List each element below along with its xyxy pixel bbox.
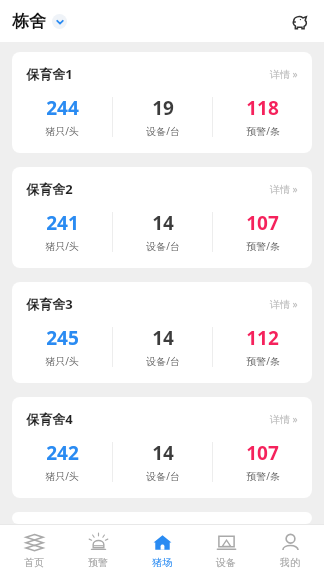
button[interactable]: 猪场	[132, 525, 192, 576]
staticText: 14	[152, 440, 174, 466]
staticText: 猪只/头	[45, 124, 79, 138]
button[interactable]: 保育舍1	[12, 52, 312, 153]
button[interactable]: 栋舍	[12, 11, 67, 32]
staticText: 首页	[24, 556, 44, 569]
staticText: 14	[152, 210, 174, 236]
staticText: 保育舍3	[26, 295, 73, 313]
button[interactable]: 保育舍3	[12, 282, 312, 383]
staticText: 栋舍	[12, 11, 46, 32]
staticText: 猪只/头	[45, 239, 79, 253]
button[interactable]: 详情	[270, 297, 298, 311]
staticText: »	[292, 182, 298, 196]
staticText: 预警/条	[246, 239, 280, 253]
button[interactable]: 保育舍4	[12, 397, 312, 498]
staticText: 设备/台	[146, 239, 180, 253]
staticText: 118	[246, 95, 279, 121]
staticText: 预警/条	[246, 124, 280, 138]
button[interactable]: 保育舍2	[12, 167, 312, 268]
staticText: 241	[46, 210, 79, 236]
staticText: »	[292, 297, 298, 311]
staticText: 详情	[270, 298, 290, 311]
staticText: 19	[152, 95, 174, 121]
staticText: 保育舍2	[26, 180, 73, 198]
staticText: 详情	[270, 413, 290, 426]
button[interactable]: Pig farm	[286, 8, 312, 34]
staticText: 预警/条	[246, 469, 280, 483]
button[interactable]: 首页	[4, 525, 64, 576]
button[interactable]: 详情	[270, 412, 298, 426]
staticText: 我的	[280, 556, 300, 569]
staticText: 245	[46, 325, 79, 351]
staticText: »	[292, 67, 298, 81]
staticText: 242	[46, 440, 79, 466]
staticText: 保育舍4	[26, 410, 73, 428]
staticText: 设备/台	[146, 124, 180, 138]
staticText: 设备/台	[146, 469, 180, 483]
staticText: 猪只/头	[45, 469, 79, 483]
staticText: 猪只/头	[45, 354, 79, 368]
staticText: 设备/台	[146, 354, 180, 368]
button[interactable]: 详情	[270, 182, 298, 196]
staticText: »	[292, 412, 298, 426]
button[interactable]: 设备	[196, 525, 256, 576]
staticText: 预警	[88, 556, 108, 569]
staticText: 107	[246, 440, 279, 466]
button[interactable]: 详情	[270, 67, 298, 81]
staticText: 244	[46, 95, 79, 121]
staticText: 预警/条	[246, 354, 280, 368]
staticText: 设备	[216, 556, 236, 569]
button[interactable]: 预警	[68, 525, 128, 576]
staticText: 112	[246, 325, 279, 351]
staticText: 107	[246, 210, 279, 236]
button[interactable]: 我的	[260, 525, 320, 576]
staticText: 14	[152, 325, 174, 351]
staticText: 详情	[270, 183, 290, 196]
staticText: 保育舍1	[26, 65, 73, 83]
staticText: 详情	[270, 68, 290, 81]
staticText: 猪场	[152, 556, 172, 569]
